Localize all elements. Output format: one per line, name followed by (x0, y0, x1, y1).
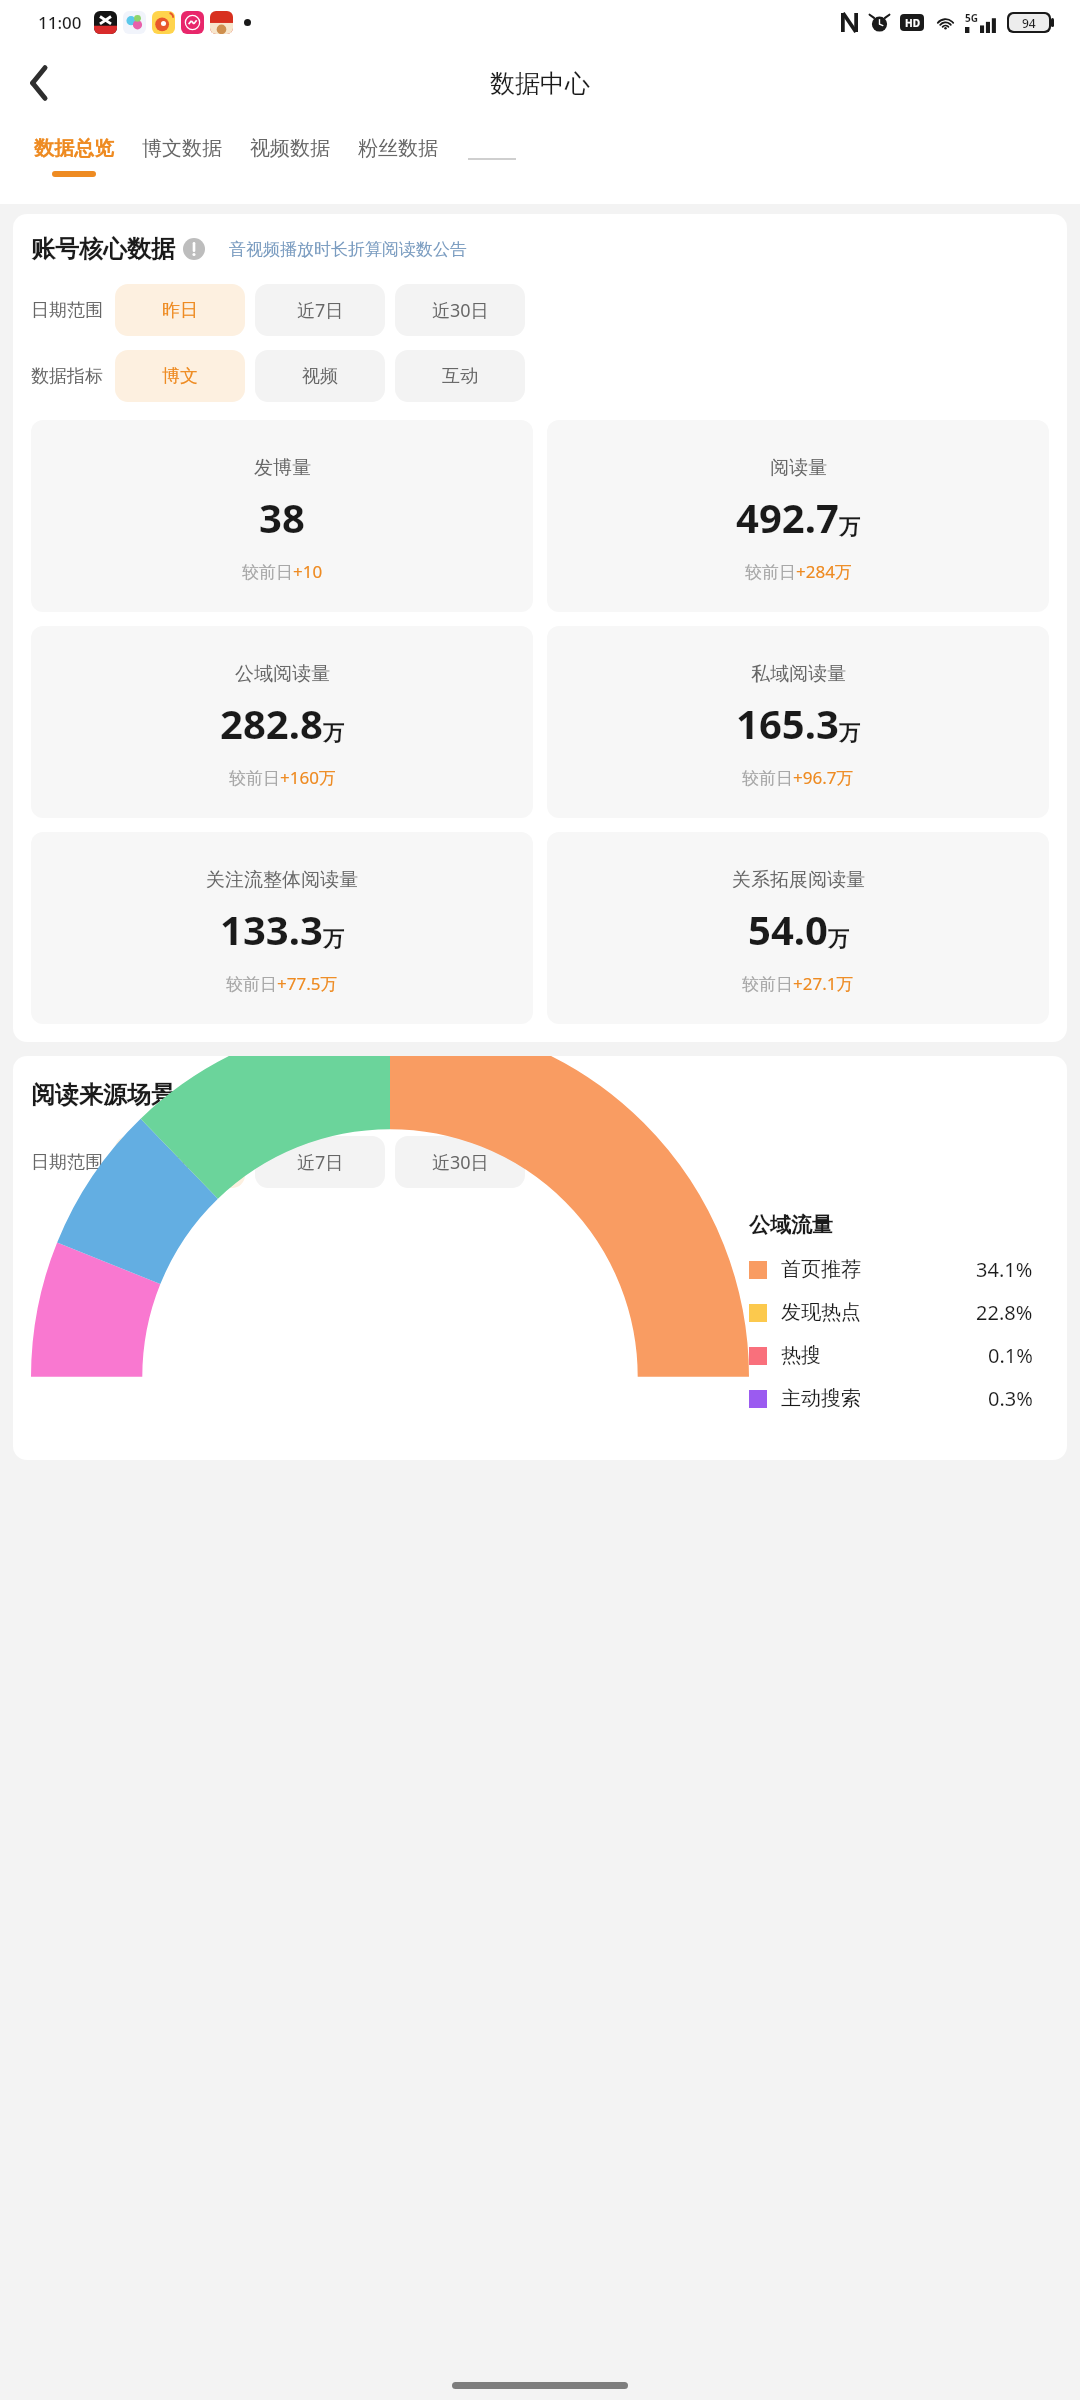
staticText: 492.7 (736, 490, 839, 544)
staticText: 视频数据 (250, 136, 330, 161)
staticText: 较前日+27.1万 (742, 972, 854, 995)
button[interactable]: 近30日 (395, 1136, 525, 1188)
button[interactable]: 主动搜索 (749, 1385, 1049, 1412)
button[interactable]: 音视频播放时长折算阅读数公告 (229, 239, 467, 260)
button[interactable]: 关系拓展阅读量 (547, 832, 1049, 1024)
button[interactable]: 昨日 (115, 284, 245, 336)
staticText: 粉丝数据 (358, 136, 438, 161)
staticText: 0.3% (988, 1385, 1033, 1412)
staticText: 昨日 (162, 1151, 198, 1174)
staticText: 数据指标 (31, 365, 103, 388)
staticText: 关注流整体阅读量 (206, 868, 358, 892)
button[interactable]: 首页推荐 (749, 1256, 1049, 1283)
button[interactable]: 说明 (183, 238, 205, 260)
button[interactable]: 视频数据 (250, 122, 330, 171)
staticText: 视频 (302, 365, 338, 388)
button[interactable]: 近7日 (255, 1136, 385, 1188)
staticText: 公域阅读量 (235, 662, 330, 686)
staticText: 互动 (442, 365, 478, 388)
staticText: 38 (259, 490, 305, 544)
button[interactable]: 关注流整体阅读量 (31, 832, 533, 1024)
staticText: HD (905, 16, 920, 30)
button[interactable]: 发博量 (31, 420, 533, 612)
staticText: 较前日+10 (242, 560, 323, 583)
staticText: 数据中心 (490, 68, 590, 99)
button[interactable]: 博文数据 (142, 122, 222, 171)
button[interactable]: 数据总览 (34, 122, 114, 177)
staticText: 34.1% (976, 1256, 1033, 1283)
staticText: 阅读来源场景 (31, 1080, 175, 1110)
button[interactable]: 热搜 (749, 1342, 1049, 1369)
button[interactable]: 视频 (255, 350, 385, 402)
staticText: 数据总览 (34, 136, 114, 161)
staticText: 133.3 (220, 902, 323, 956)
staticText: 公域流量 (749, 1212, 833, 1238)
button[interactable]: 昨日 (115, 1136, 245, 1188)
staticText: 近7日 (297, 298, 344, 323)
staticText: 发现热点 (781, 1300, 861, 1325)
staticText: 热搜 (781, 1343, 821, 1368)
staticText: 近30日 (432, 1150, 489, 1175)
button[interactable]: 近7日 (255, 284, 385, 336)
button[interactable]: 博文 (115, 350, 245, 402)
staticText: 万 (828, 926, 849, 952)
staticText: 首页推荐 (781, 1257, 861, 1282)
button[interactable]: 公域阅读量 (31, 626, 533, 818)
staticText: 94 (1022, 15, 1036, 31)
staticText: 博文数据 (142, 136, 222, 161)
button[interactable]: 近30日 (395, 284, 525, 336)
staticText: 阅读量 (770, 456, 827, 480)
staticText: 万 (839, 720, 860, 746)
button[interactable]: 粉丝数据 (358, 122, 438, 171)
staticText: 较前日+160万 (229, 766, 336, 789)
staticText: 万 (323, 926, 344, 952)
staticText: 主动搜索 (781, 1386, 861, 1411)
staticText: 0.1% (988, 1342, 1033, 1369)
staticText: 较前日+284万 (745, 560, 852, 583)
staticText: 22.8% (976, 1299, 1033, 1326)
staticText: 282.8 (220, 696, 323, 750)
staticText: 165.3 (736, 696, 839, 750)
staticText: 近7日 (297, 1150, 344, 1175)
staticText: 关系拓展阅读量 (732, 868, 865, 892)
staticText: 日期范围 (31, 299, 103, 322)
staticText: 较前日+96.7万 (742, 766, 854, 789)
staticText: 万 (323, 720, 344, 746)
staticText: 5G (965, 11, 978, 25)
button[interactable]: 私域阅读量 (547, 626, 1049, 818)
staticText: 较前日+77.5万 (226, 972, 338, 995)
staticText: 11:00 (38, 11, 82, 34)
staticText: 博文 (162, 365, 198, 388)
button[interactable]: 阅读量 (547, 420, 1049, 612)
staticText: 日期范围 (31, 1151, 103, 1174)
staticText: 发博量 (254, 456, 311, 480)
button[interactable]: Back (10, 54, 68, 112)
staticText: 54.0 (748, 902, 828, 956)
staticText: 万 (839, 514, 860, 540)
button[interactable]: 互动 (395, 350, 525, 402)
staticText: 音视频播放时长折算阅读数公告 (229, 239, 467, 260)
staticText: 近30日 (432, 298, 489, 323)
staticText: 昨日 (162, 299, 198, 322)
staticText: 私域阅读量 (751, 662, 846, 686)
button[interactable]: 发现热点 (749, 1299, 1049, 1326)
staticText: 账号核心数据 (31, 234, 175, 264)
